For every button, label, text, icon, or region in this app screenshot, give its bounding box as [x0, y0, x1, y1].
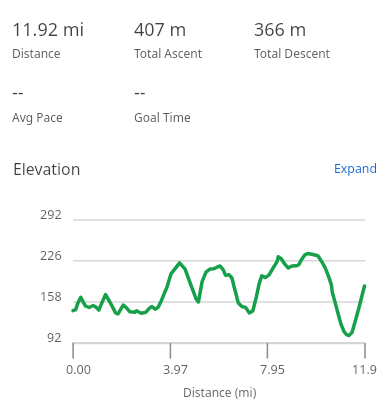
button[interactable]: Elevation: [13, 158, 81, 180]
staticText: Goal Time: [134, 109, 191, 125]
staticText: 11.9: [352, 361, 377, 378]
staticText: Total Descent: [254, 45, 330, 61]
button[interactable]: --: [12, 80, 24, 105]
staticText: 11.92 mi: [12, 17, 85, 42]
staticText: 158: [40, 288, 62, 305]
staticText: 3.97: [163, 361, 188, 378]
staticText: Avg Pace: [12, 109, 63, 125]
staticText: Total Ascent: [134, 45, 203, 61]
staticText: 407 m: [134, 17, 187, 42]
button[interactable]: 407 m: [134, 17, 187, 42]
button[interactable]: 366 m: [254, 17, 307, 42]
staticText: 366 m: [254, 17, 307, 42]
staticText: Elevation: [13, 158, 81, 180]
staticText: 7.95: [260, 361, 285, 378]
staticText: Distance: [12, 45, 61, 61]
button[interactable]: --: [134, 80, 146, 105]
other: Elevation profile chart: [0, 0, 388, 415]
staticText: --: [12, 80, 24, 105]
staticText: 92: [47, 329, 62, 346]
staticText: 292: [40, 206, 62, 223]
staticText: Expand: [334, 160, 377, 177]
staticText: 226: [40, 247, 62, 264]
staticText: 0.00: [66, 361, 91, 378]
button[interactable]: Expand: [334, 160, 377, 177]
staticText: Distance (mi): [183, 384, 257, 400]
staticText: --: [134, 80, 146, 105]
button[interactable]: 11.92 mi: [12, 17, 85, 42]
